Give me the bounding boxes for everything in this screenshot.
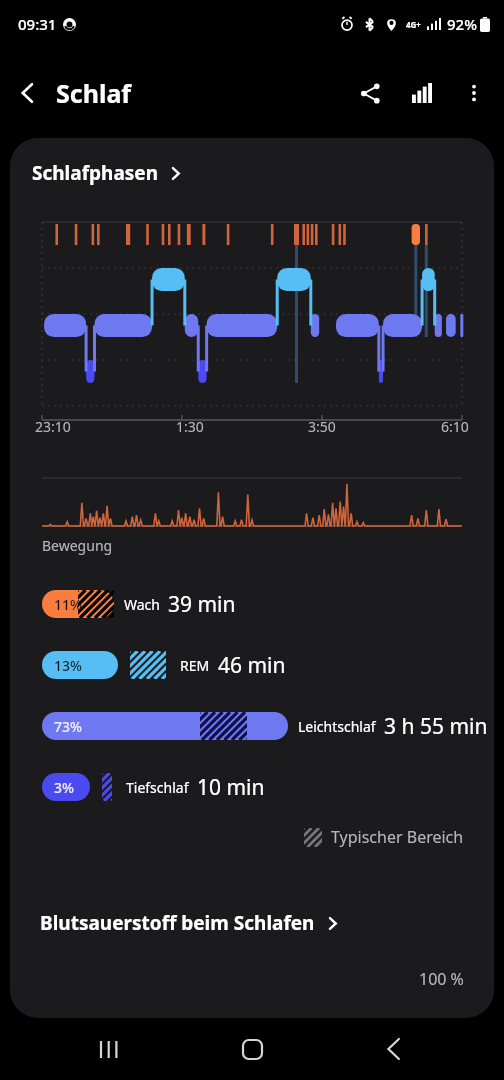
staticText: 92% (447, 14, 477, 34)
staticText: 4G+ (406, 19, 421, 30)
staticText: 3:50 (308, 417, 336, 436)
staticText: 10 min (197, 773, 265, 802)
staticText: 13% (54, 656, 82, 675)
button[interactable]: 13% (10, 650, 494, 680)
staticText: 6:10 (441, 417, 469, 436)
button[interactable]: Zurück (362, 1018, 426, 1080)
button[interactable]: Zurück (0, 65, 56, 121)
staticText: Bewegung (42, 536, 113, 555)
button[interactable]: Letzte Apps (78, 1018, 142, 1080)
staticText: 3 h 55 min (384, 712, 488, 741)
button[interactable]: 3% (10, 772, 494, 802)
staticText: Wach (124, 595, 160, 614)
staticText: Schlaf (56, 76, 132, 110)
button[interactable]: 11% (10, 589, 494, 619)
staticText: 39 min (168, 590, 236, 619)
staticText: 23:10 (35, 417, 71, 436)
staticText: 100 % (419, 968, 464, 990)
staticText: Schlafphasen (32, 160, 158, 186)
staticText: Leichtschlaf (298, 717, 376, 736)
staticText: Tiefschlaf (126, 778, 189, 797)
button[interactable]: Teilen (344, 67, 396, 119)
staticText: 11% (54, 595, 82, 614)
staticText: 46 min (218, 651, 286, 680)
staticText: REM (180, 656, 210, 675)
staticText: 3% (54, 778, 74, 797)
staticText: 1:30 (176, 417, 204, 436)
button[interactable]: Mehr Optionen (448, 67, 500, 119)
button[interactable]: Schlafphasen (10, 138, 494, 186)
staticText: Blutsauerstoff beim Schlafen (40, 910, 315, 936)
button[interactable]: Blutsauerstoff beim Schlafen (10, 910, 494, 936)
staticText: 73% (54, 717, 82, 736)
button[interactable]: Startbildschirm (220, 1018, 284, 1080)
button[interactable]: 73% (10, 711, 494, 741)
staticText: 09:31 (18, 14, 57, 34)
staticText: Typischer Bereich (331, 826, 464, 848)
button[interactable]: Statistik (396, 67, 448, 119)
